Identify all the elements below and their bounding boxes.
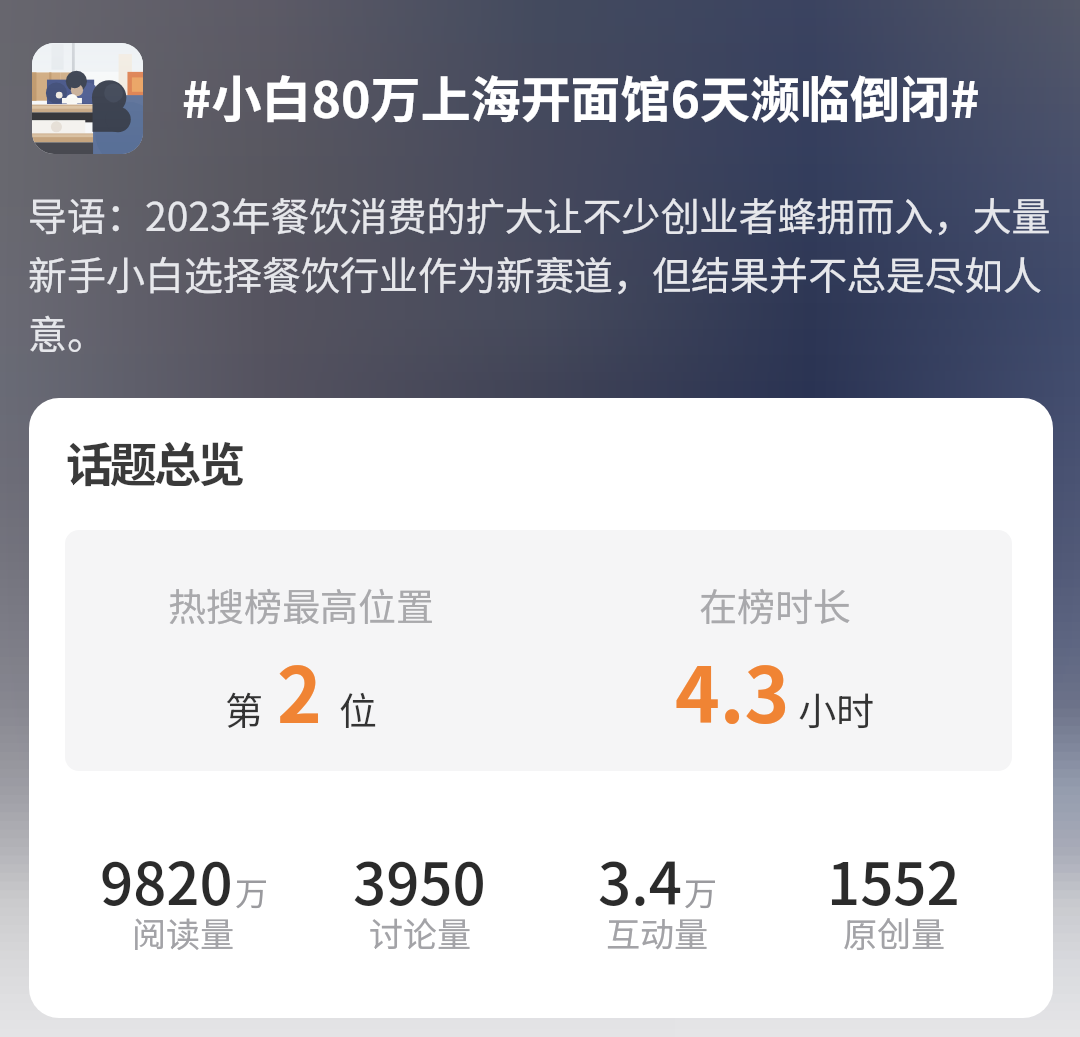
staticText: 导语：2023年餐饮消费的扩大让不少创业者蜂拥而入，大量新手小白选择餐饮行业作为… (28, 186, 1054, 360)
staticText: 4.3 (675, 635, 790, 745)
staticText: 万 (684, 868, 717, 916)
staticText: 1552 (827, 838, 960, 922)
staticText: 第 (225, 681, 264, 736)
staticText: 3.4 (598, 838, 682, 922)
button[interactable]: 话题总览 (29, 398, 1053, 1018)
staticText: 原创量 (843, 908, 945, 957)
staticText: 2 (277, 635, 322, 745)
staticText: 话题总览 (66, 427, 242, 495)
button[interactable]: 9820 (65, 838, 301, 971)
staticText: 讨论量 (369, 908, 471, 957)
button[interactable]: 1552 (775, 838, 1012, 971)
staticText: 小时 (798, 681, 875, 736)
staticText: 3950 (353, 838, 486, 922)
staticText: 在榜时长 (699, 577, 852, 632)
staticText: 万 (235, 868, 268, 916)
staticText: 位 (339, 681, 378, 736)
staticText: 热搜榜最高位置 (168, 577, 435, 632)
button[interactable]: 3950 (301, 838, 538, 971)
staticText: 互动量 (606, 908, 708, 957)
button[interactable]: 3.4 (538, 838, 775, 971)
staticText: 9820 (100, 838, 233, 922)
staticText: 阅读量 (132, 908, 234, 957)
staticText: #小白80万上海开面馆6天濒临倒闭# (182, 60, 980, 132)
button[interactable]: Topic thumbnail (32, 43, 143, 154)
